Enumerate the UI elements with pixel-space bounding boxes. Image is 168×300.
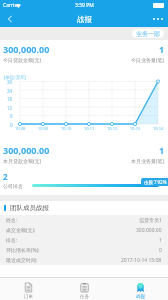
button[interactable]: 任务: [56, 278, 112, 300]
staticText: 10.08: [15, 126, 26, 131]
staticText: 任务: [80, 294, 89, 300]
staticText: 姓名:: [6, 217, 18, 224]
button[interactable]: 最近成交时间:: [0, 255, 168, 265]
staticText: 今日业务量(笔): [131, 57, 165, 64]
staticText: Carrier: [3, 2, 20, 9]
staticText: 公司排名: [3, 183, 23, 189]
staticText: 订单: [24, 294, 33, 300]
staticText: 1: [159, 43, 165, 55]
staticText: 战报: [136, 294, 145, 300]
staticText: 最近成交时间:: [6, 257, 38, 264]
staticText: 2: [3, 171, 8, 182]
button[interactable]: 订单: [0, 278, 56, 300]
staticText: 300,000.00: [3, 144, 50, 156]
button[interactable]: 成交金额(元):: [0, 225, 168, 235]
staticText: 18: [7, 96, 13, 102]
staticText: 10.13: [130, 126, 141, 131]
staticText: 1: [159, 237, 162, 244]
staticText: 24: [7, 88, 13, 94]
staticText: 300,000.00: [136, 227, 162, 234]
staticText: 0: [10, 122, 13, 128]
staticText: 今日贷款金额(元): [3, 57, 42, 64]
staticText: 10.14: [153, 126, 164, 131]
staticText: 12: [7, 105, 13, 111]
staticText: 300,000.00: [3, 43, 50, 55]
staticText: 30: [7, 79, 13, 85]
staticText: 6: [10, 113, 13, 119]
staticText: 10.10: [61, 126, 72, 131]
staticText: 10.11: [84, 126, 95, 131]
staticText: 本月贷款金额(元): [3, 158, 42, 165]
staticText: 2017-10-14 15:08: [121, 257, 162, 264]
button[interactable]: 战报: [112, 278, 168, 300]
staticText: 团队成员战报: [10, 204, 49, 212]
staticText: 击败了92%: [144, 179, 167, 185]
button[interactable]: 环比增长率(%):: [0, 245, 168, 255]
staticText: 排名:: [6, 237, 18, 244]
staticText: 本月业务量(笔): [131, 158, 165, 165]
staticText: 业务一部: [136, 30, 160, 38]
button[interactable]: Back: [0, 11, 20, 27]
staticText: 10.09: [38, 126, 49, 131]
staticText: 10.12: [107, 126, 118, 131]
button[interactable]: 业务一部: [132, 29, 164, 38]
button[interactable]: 姓名:: [0, 215, 168, 225]
staticText: 1: [159, 144, 165, 156]
staticText: 0: [159, 247, 162, 254]
staticText: 信贷专员1: [139, 217, 162, 224]
staticText: 环比增长率(%):: [6, 247, 40, 254]
staticText: (单位:万元): [4, 74, 26, 80]
button[interactable]: More options: [148, 11, 168, 27]
staticText: 3:59 PM: [75, 2, 94, 9]
button[interactable]: 排名:: [0, 235, 168, 245]
staticText: 战报: [77, 15, 92, 24]
staticText: 成交金额(元):: [6, 227, 36, 234]
